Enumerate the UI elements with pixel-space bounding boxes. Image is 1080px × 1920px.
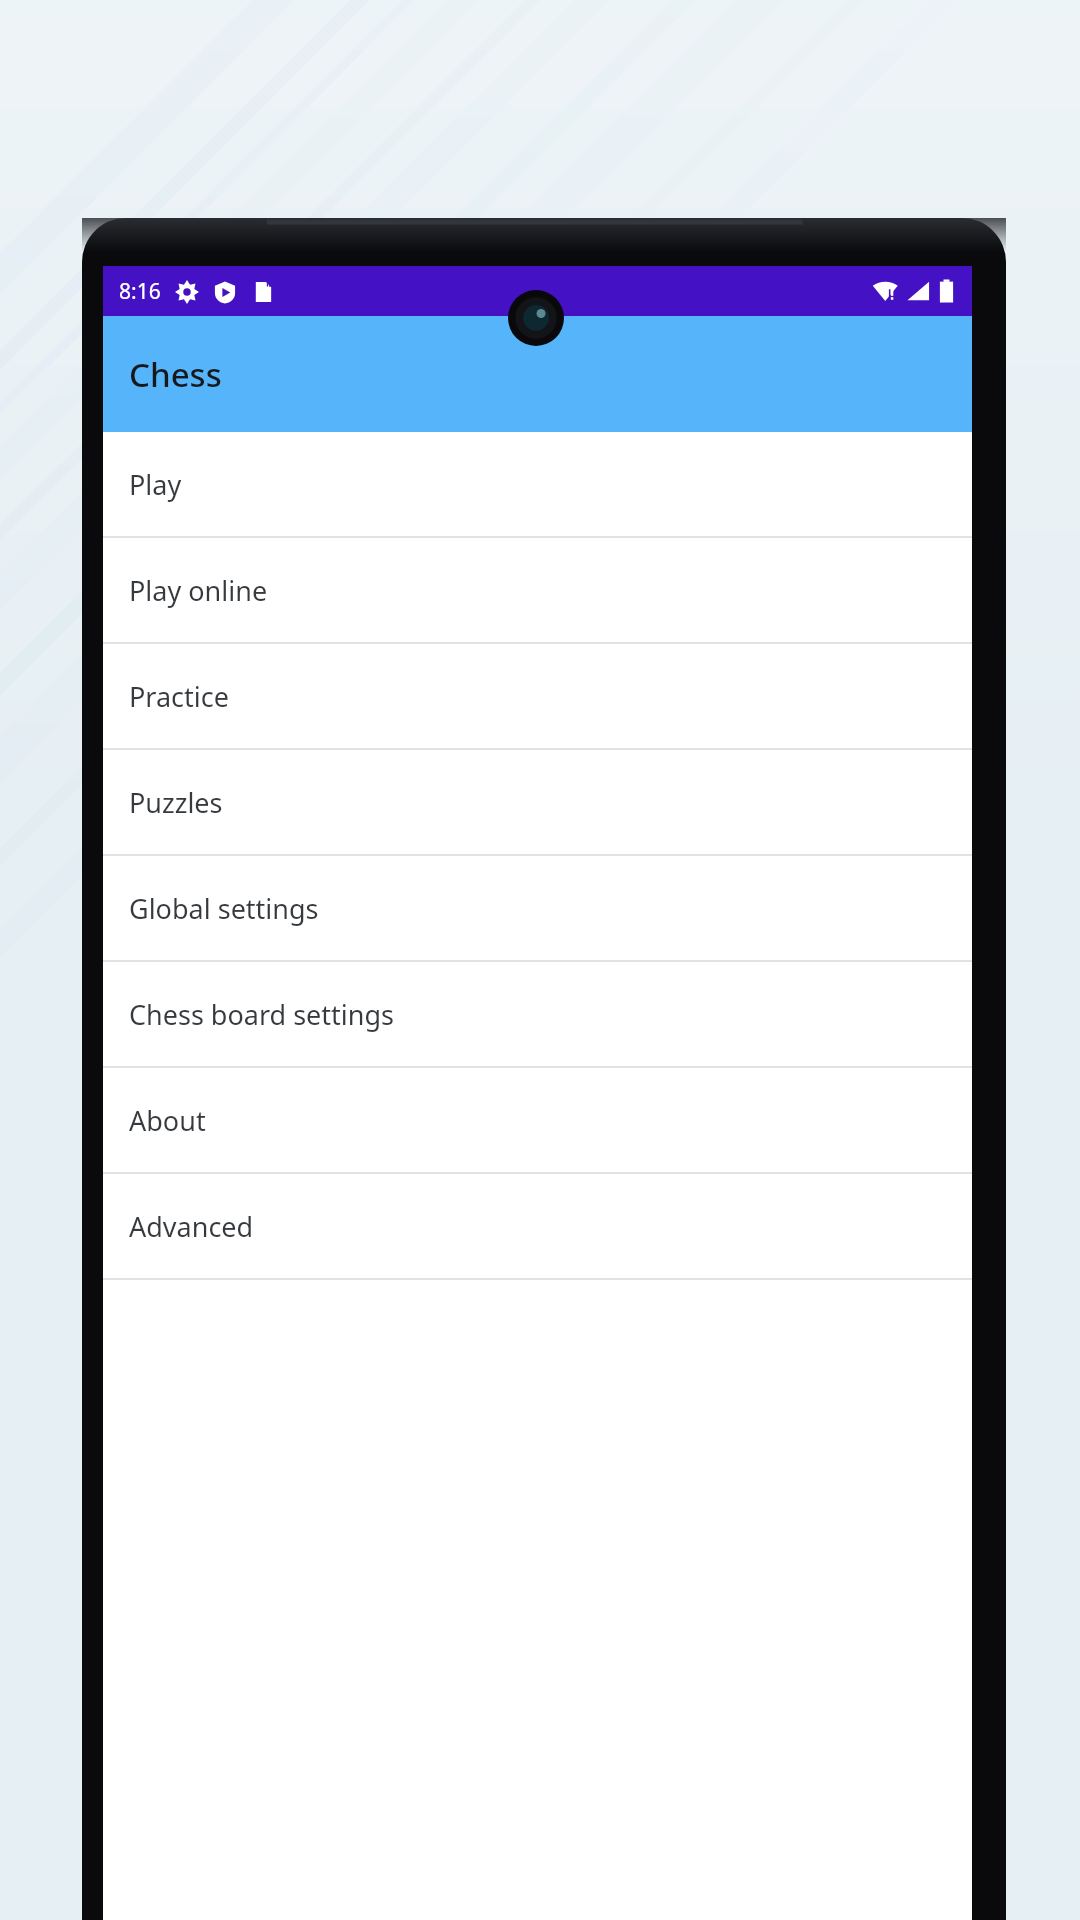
button[interactable]: Global settings	[103, 856, 972, 960]
staticText: Global settings	[129, 890, 319, 927]
button[interactable]: Practice	[103, 644, 972, 748]
staticText: 8:16	[119, 277, 161, 306]
staticText: Advanced	[129, 1208, 254, 1245]
staticText: Chess	[129, 352, 222, 397]
button[interactable]: Play	[103, 432, 972, 536]
staticText: About	[129, 1102, 206, 1139]
staticText: Play online	[129, 572, 268, 609]
staticText: Chess board settings	[129, 996, 395, 1033]
button[interactable]: Play online	[103, 538, 972, 642]
button[interactable]: About	[103, 1068, 972, 1172]
button[interactable]: Puzzles	[103, 750, 972, 854]
staticText: Play	[129, 466, 182, 503]
staticText: Puzzles	[129, 784, 223, 821]
button[interactable]: Advanced	[103, 1174, 972, 1278]
staticText: Practice	[129, 678, 229, 715]
button[interactable]: Chess board settings	[103, 962, 972, 1066]
